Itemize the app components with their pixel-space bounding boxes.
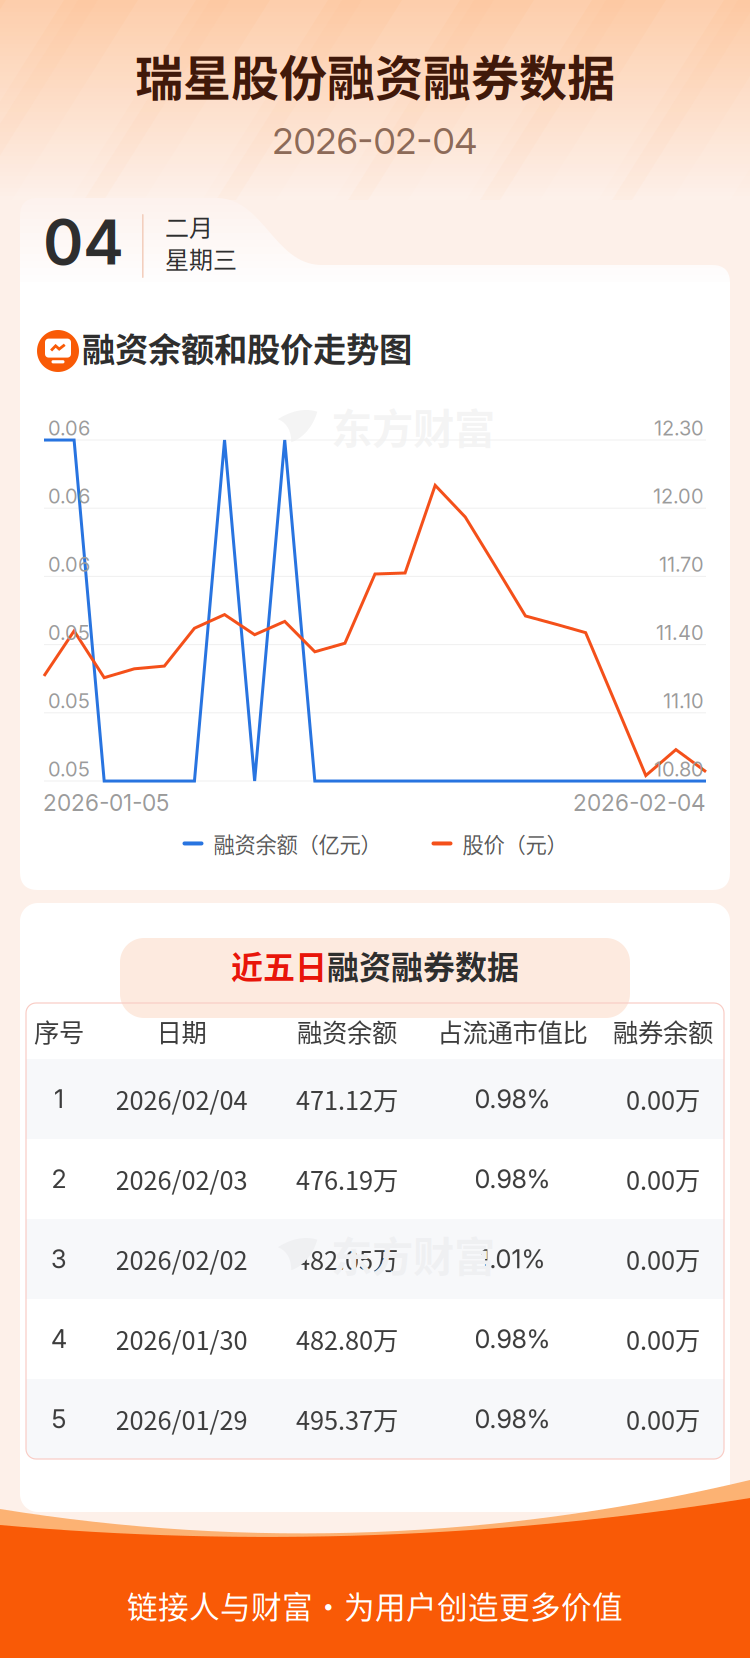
staticText: 11.70 xyxy=(659,552,704,577)
staticText: 近五日 xyxy=(231,942,327,988)
staticText: 2026/02/03 xyxy=(115,1161,247,1197)
staticText: 瑞星股份融资融券数据 xyxy=(135,40,615,109)
staticText: 0.00万 xyxy=(626,1241,700,1277)
staticText: 04 xyxy=(43,205,124,279)
staticText: 占流通市值比 xyxy=(437,1013,587,1049)
staticText: 482.80万 xyxy=(296,1321,398,1357)
staticText: 0.00万 xyxy=(626,1401,700,1437)
staticText: 4 xyxy=(51,1324,67,1354)
staticText: 11.40 xyxy=(656,621,704,645)
staticText: 1 xyxy=(54,1084,64,1114)
staticText: 482.05万 xyxy=(296,1241,398,1277)
staticText: 3 xyxy=(51,1244,67,1274)
staticText: 0.98% xyxy=(474,1084,550,1114)
staticText: 2026-02-04 xyxy=(573,789,706,816)
staticText: 0.00万 xyxy=(626,1081,700,1117)
staticText: 2026/02/04 xyxy=(115,1081,247,1117)
staticText: 0.05 xyxy=(48,689,90,713)
staticText: 2026/01/30 xyxy=(115,1321,247,1357)
staticText: 融资余额 xyxy=(297,1013,397,1049)
staticText: 2026-02-04 xyxy=(272,119,477,163)
staticText: 链接人与财富·为用户创造更多价值 xyxy=(127,1583,623,1627)
staticText: 0.98% xyxy=(474,1324,550,1354)
staticText: 0.06 xyxy=(48,416,90,440)
staticText: 星期三 xyxy=(165,241,237,276)
staticText: 1.01% xyxy=(479,1244,545,1274)
staticText: 2026/01/29 xyxy=(115,1401,247,1437)
staticText: 2 xyxy=(51,1164,66,1194)
staticText: 11.10 xyxy=(663,689,704,713)
staticText: 融券余额 xyxy=(613,1013,713,1049)
staticText: 12.30 xyxy=(654,416,704,440)
staticText: 序号 xyxy=(34,1013,84,1049)
staticText: 10.80 xyxy=(654,757,704,781)
staticText: 0.98% xyxy=(474,1164,550,1194)
staticText: 融资融券数据 xyxy=(327,942,519,988)
staticText: 股价（元） xyxy=(462,828,567,859)
staticText: 12.00 xyxy=(653,484,704,508)
staticText: 0.06 xyxy=(48,552,90,577)
staticText: 0.05 xyxy=(48,757,90,781)
staticText: 东方财富 xyxy=(331,1224,495,1284)
staticText: 471.12万 xyxy=(296,1081,398,1117)
staticText: 二月 xyxy=(165,209,213,244)
staticText: 0.98% xyxy=(474,1404,550,1434)
staticText: 5 xyxy=(51,1404,66,1434)
staticText: 融资余额和股价走势图 xyxy=(82,323,412,371)
staticText: 0.00万 xyxy=(626,1321,700,1357)
staticText: 0.00万 xyxy=(626,1161,700,1197)
staticText: 融资余额（亿元） xyxy=(213,828,381,859)
staticText: 2026-01-05 xyxy=(43,789,169,816)
staticText: 日期 xyxy=(156,1013,206,1049)
staticText: 495.37万 xyxy=(296,1401,398,1437)
staticText: 0.05 xyxy=(48,621,90,645)
staticText: 0.06 xyxy=(48,484,90,508)
staticText: 476.19万 xyxy=(296,1161,398,1197)
staticText: 东方财富 xyxy=(331,396,495,456)
staticText: 2026/02/02 xyxy=(115,1241,247,1277)
